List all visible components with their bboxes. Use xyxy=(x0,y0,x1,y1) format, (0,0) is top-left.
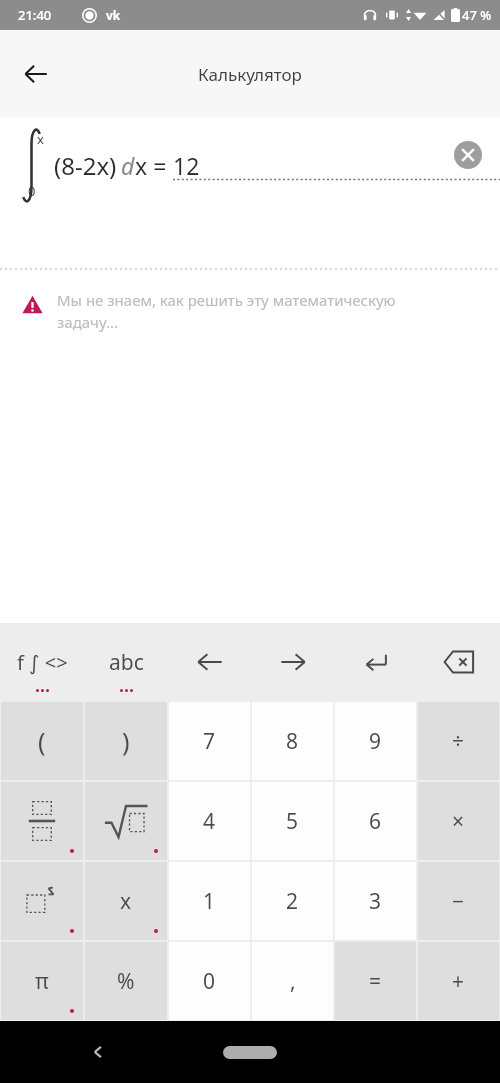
button[interactable]: x xyxy=(85,862,167,940)
staticText: (8-2x) xyxy=(54,149,117,182)
button[interactable]: 6 xyxy=(335,782,416,860)
button[interactable]: 3 xyxy=(335,862,416,940)
button[interactable]: Backspace xyxy=(417,623,500,701)
button[interactable]: π xyxy=(1,942,83,1020)
button[interactable]: 4 xyxy=(169,782,250,860)
staticText: 5 xyxy=(286,807,299,836)
staticText: 6 xyxy=(369,807,382,836)
staticText: 8 xyxy=(286,727,299,756)
staticText: 3 xyxy=(369,887,382,916)
staticText: 0 xyxy=(28,182,36,200)
button[interactable]: × xyxy=(418,782,499,860)
staticText: d xyxy=(121,150,135,181)
staticText: ÷ xyxy=(452,727,465,756)
button[interactable]: ÷ xyxy=(418,702,499,780)
button[interactable]: 2 xyxy=(252,862,333,940)
staticText: 21:40 xyxy=(18,6,52,24)
button[interactable]: Power of two xyxy=(1,862,83,940)
button[interactable]: − xyxy=(418,862,499,940)
button[interactable]: = xyxy=(335,942,416,1020)
button[interactable]: 5 xyxy=(252,782,333,860)
staticText: 12 xyxy=(173,150,200,181)
staticText: × xyxy=(452,807,465,836)
button[interactable]: + xyxy=(418,942,499,1020)
staticText: ) xyxy=(122,724,130,758)
button[interactable]: abc xyxy=(84,623,168,701)
button[interactable]: Square root xyxy=(85,782,167,860)
button[interactable]: Fraction xyxy=(1,782,83,860)
button[interactable]: Enter xyxy=(334,623,417,701)
staticText: + xyxy=(452,967,465,996)
staticText: = xyxy=(369,967,382,996)
button[interactable]: % xyxy=(85,942,167,1020)
staticText: 0 xyxy=(203,967,216,996)
button[interactable]: ( xyxy=(1,702,83,780)
button[interactable]: Move left xyxy=(168,623,251,701)
button[interactable]: Home xyxy=(223,1046,277,1059)
button[interactable]: f ∫ <> xyxy=(0,623,84,701)
button[interactable]: 1 xyxy=(169,862,250,940)
staticText: ( xyxy=(38,724,46,758)
staticText: f ∫ <> xyxy=(17,649,68,676)
staticText: 47 % xyxy=(462,6,492,24)
staticText: vk xyxy=(106,7,121,23)
staticText: x xyxy=(120,887,132,916)
staticText: Мы не знаем, как решить эту математическ… xyxy=(57,290,460,333)
button[interactable]: , xyxy=(252,942,333,1020)
button[interactable]: Move right xyxy=(251,623,334,701)
staticText: x xyxy=(37,130,44,148)
button[interactable]: 0 xyxy=(169,942,250,1020)
button[interactable]: Clear xyxy=(451,138,485,172)
staticText: 9 xyxy=(369,727,382,756)
button[interactable]: 8 xyxy=(252,702,333,780)
staticText: , xyxy=(290,967,296,996)
staticText: π xyxy=(35,967,49,996)
button[interactable]: 7 xyxy=(169,702,250,780)
staticText: 4 xyxy=(203,807,216,836)
staticText: x = xyxy=(135,150,173,181)
staticText: 2 xyxy=(286,887,299,916)
staticText: 1 xyxy=(203,887,216,916)
button[interactable]: 9 xyxy=(335,702,416,780)
button[interactable]: Back xyxy=(10,48,62,100)
button[interactable]: Back xyxy=(78,1032,118,1072)
staticText: abc xyxy=(109,648,144,677)
button[interactable]: ) xyxy=(85,702,167,780)
staticText: % xyxy=(117,967,135,996)
staticText: − xyxy=(452,887,465,916)
staticText: Калькулятор xyxy=(198,63,302,86)
staticText: 7 xyxy=(203,727,216,756)
